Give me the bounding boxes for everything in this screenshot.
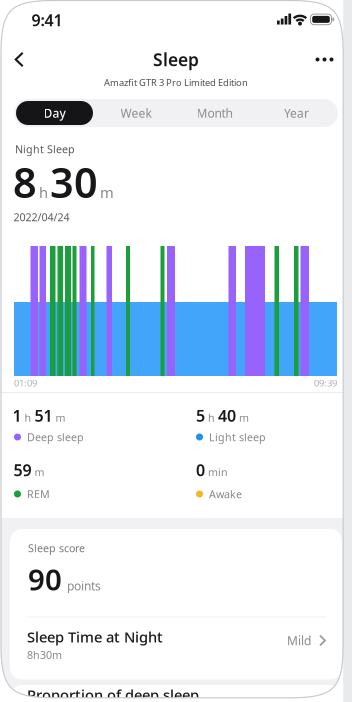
staticText: 40 (218, 405, 236, 426)
staticText: 51 (34, 405, 52, 426)
staticText: 30 (50, 155, 98, 209)
staticText: Sleep score (28, 541, 85, 555)
staticText: 8 (13, 155, 37, 209)
staticText: 90 (28, 559, 62, 598)
staticText: Year (284, 105, 309, 121)
button[interactable]: Back (14, 52, 24, 67)
staticText: m (34, 465, 44, 479)
staticText: Amazfit GTR 3 Pro Limited Edition (104, 76, 248, 89)
staticText: Week (120, 105, 151, 121)
staticText: REM (27, 487, 50, 501)
staticText: Sleep Time at Night (27, 627, 163, 647)
staticText: m (100, 183, 114, 202)
staticText: points (67, 578, 101, 594)
staticText: 2022/04/24 (13, 210, 69, 224)
button[interactable]: Year (258, 101, 335, 125)
staticText: Sleep (153, 48, 199, 71)
staticText: 09:39 (314, 377, 337, 389)
button[interactable]: Sleep Time at Night (10, 613, 342, 675)
staticText: m (239, 410, 249, 425)
staticText: 5 (196, 405, 205, 426)
button[interactable]: Day (16, 101, 93, 125)
button[interactable]: Month (176, 101, 253, 125)
staticText: 01:09 (14, 377, 37, 389)
staticText: Day (43, 105, 65, 121)
staticText: Awake (209, 487, 242, 501)
staticText: Deep sleep (27, 430, 84, 444)
staticText: Light sleep (209, 430, 266, 444)
staticText: 8h30m (27, 648, 62, 662)
staticText: Month (196, 105, 232, 121)
staticText: h (39, 183, 48, 202)
staticText: m (55, 410, 65, 425)
staticText: Proportion of deep sleep (27, 685, 199, 702)
staticText: 0 (196, 459, 205, 481)
staticText: Mild (287, 632, 311, 648)
staticText: Night Sleep (15, 142, 75, 156)
staticText: 1 (12, 405, 21, 426)
button[interactable]: Week (97, 101, 174, 125)
staticText: 59 (13, 459, 31, 481)
staticText: h (208, 410, 215, 425)
staticText: min (208, 465, 228, 479)
staticText: 9:41 (31, 9, 62, 31)
staticText: h (24, 410, 31, 425)
button[interactable]: More (314, 56, 334, 62)
button[interactable]: Proportion of deep sleep (10, 685, 342, 702)
